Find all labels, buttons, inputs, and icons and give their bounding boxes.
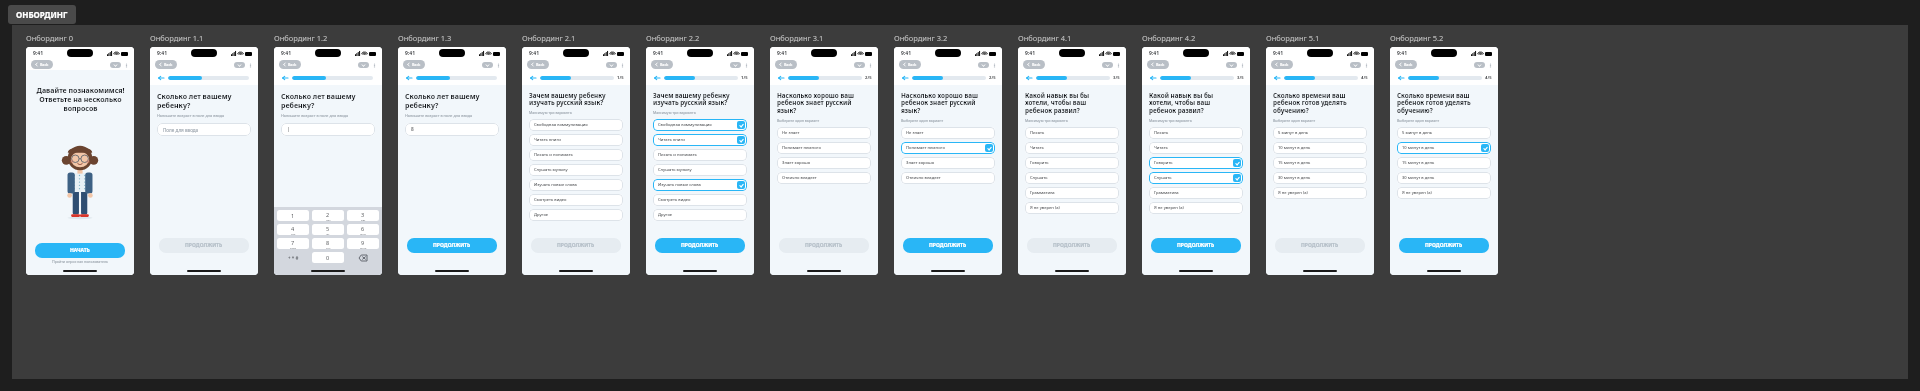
button[interactable]: More <box>247 62 253 68</box>
button[interactable]: ОНБОРДИНГ <box>8 5 76 24</box>
button[interactable]: Expand <box>730 62 741 68</box>
button[interactable]: ПРОДОЛЖИТЬ <box>1275 238 1365 253</box>
button[interactable]: 7 <box>277 238 309 249</box>
button[interactable]: Слушать музыку <box>529 164 623 176</box>
button[interactable]: Другое <box>529 209 623 221</box>
button[interactable]: Back <box>1271 60 1293 69</box>
button[interactable]: Back <box>652 73 661 82</box>
button[interactable]: Я не уверен (а) <box>1397 187 1491 199</box>
button[interactable]: 5 <box>312 224 344 235</box>
button[interactable]: Expand <box>1350 62 1361 68</box>
button[interactable]: Писать и понимать <box>529 149 623 161</box>
button[interactable]: Знает хорошо <box>777 157 871 169</box>
button[interactable]: 6 <box>347 224 379 235</box>
button[interactable]: 8 <box>312 238 344 249</box>
button[interactable]: Изучать новые слова <box>529 179 623 191</box>
button[interactable]: More <box>619 62 625 68</box>
button[interactable]: Читать книги <box>653 134 747 146</box>
button[interactable]: 2 <box>312 210 344 221</box>
button[interactable]: Не знает <box>777 127 871 139</box>
button[interactable]: Свободная коммуникация <box>653 119 747 131</box>
button[interactable]: ПРОДОЛЖИТЬ <box>1151 238 1241 253</box>
button[interactable]: Грамматика <box>1149 187 1243 199</box>
button[interactable]: Back <box>528 73 537 82</box>
button[interactable]: 5 минут в день <box>1273 127 1367 139</box>
button[interactable]: Отлично владеет <box>777 172 871 184</box>
button[interactable]: Грамматика <box>1025 187 1119 199</box>
button[interactable]: Expand <box>1226 62 1237 68</box>
button[interactable]: ПРОДОЛЖИТЬ <box>779 238 869 253</box>
button[interactable]: 30 минут в день <box>1397 172 1491 184</box>
button[interactable]: ПРОДОЛЖИТЬ <box>655 238 745 253</box>
button[interactable]: 9 <box>347 238 379 249</box>
button[interactable]: Понимает немного <box>901 142 995 154</box>
button[interactable]: 5 минут в день <box>1397 127 1491 139</box>
button[interactable]: 10 минут в день <box>1273 142 1367 154</box>
button[interactable]: Я не уверен (а) <box>1273 187 1367 199</box>
button[interactable]: Слушать <box>1025 172 1119 184</box>
button[interactable]: 8 <box>405 123 499 136</box>
button[interactable]: Back <box>776 73 785 82</box>
button[interactable]: Expand <box>482 62 493 68</box>
button[interactable]: Back <box>1147 60 1169 69</box>
button[interactable]: Говорить <box>1149 157 1243 169</box>
button[interactable]: + * # <box>277 252 309 263</box>
button[interactable]: Отлично владеет <box>901 172 995 184</box>
button[interactable]: Смотреть видео <box>653 194 747 206</box>
button[interactable]: НАЧАТЬ <box>35 243 125 258</box>
button[interactable]: Expand <box>978 62 989 68</box>
button[interactable]: Другое <box>653 209 747 221</box>
button[interactable]: Back <box>1023 60 1045 69</box>
button[interactable]: 4 <box>277 224 309 235</box>
button[interactable]: Back <box>156 73 165 82</box>
button[interactable]: Back <box>403 60 425 69</box>
button[interactable]: Слушать музыку <box>653 164 747 176</box>
button[interactable]: More <box>743 62 749 68</box>
button[interactable]: More <box>1363 62 1369 68</box>
button[interactable]: Изучать новые слова <box>653 179 747 191</box>
button[interactable]: Back <box>1396 73 1405 82</box>
button[interactable]: Писать <box>1149 127 1243 139</box>
button[interactable]: Писать и понимать <box>653 149 747 161</box>
button[interactable]: Back <box>775 60 797 69</box>
button[interactable]: 30 минут в день <box>1273 172 1367 184</box>
button[interactable]: ПРОДОЛЖИТЬ <box>903 238 993 253</box>
button[interactable]: ПРОДОЛЖИТЬ <box>407 238 497 253</box>
button[interactable]: More <box>1239 62 1245 68</box>
button[interactable]: Back <box>527 60 549 69</box>
button[interactable]: Читать <box>1025 142 1119 154</box>
button[interactable]: Я не уверен (а) <box>1149 202 1243 214</box>
button[interactable]: Back <box>404 73 413 82</box>
button[interactable]: Back <box>280 73 289 82</box>
button[interactable]: 10 минут в день <box>1397 142 1491 154</box>
button[interactable]: Expand <box>1102 62 1113 68</box>
button[interactable]: ПРОДОЛЖИТЬ <box>1399 238 1489 253</box>
button[interactable]: 0 <box>312 252 344 263</box>
button[interactable]: More <box>867 62 873 68</box>
button[interactable]: Expand <box>854 62 865 68</box>
button[interactable]: Back <box>1148 73 1157 82</box>
button[interactable]: Я не уверен (а) <box>1025 202 1119 214</box>
button[interactable]: Back <box>279 60 301 69</box>
button[interactable]: Expand <box>234 62 245 68</box>
button[interactable]: ПРОДОЛЖИТЬ <box>531 238 621 253</box>
button[interactable]: Expand <box>606 62 617 68</box>
button[interactable]: Back <box>155 60 177 69</box>
button[interactable]: Писать <box>1025 127 1119 139</box>
button[interactable]: Поле для ввода <box>157 123 251 136</box>
button[interactable]: Слушать <box>1149 172 1243 184</box>
button[interactable]: Back <box>1272 73 1281 82</box>
button[interactable]: Delete <box>347 252 379 263</box>
button[interactable]: Знает хорошо <box>901 157 995 169</box>
button[interactable]: Expand <box>1474 62 1485 68</box>
button[interactable]: Смотреть видео <box>529 194 623 206</box>
button[interactable]: Back <box>899 60 921 69</box>
button[interactable]: Back <box>1395 60 1417 69</box>
button[interactable]: 15 минут в день <box>1273 157 1367 169</box>
button[interactable]: Пройти опрос как пользователь <box>52 259 108 264</box>
button[interactable]: More <box>495 62 501 68</box>
button[interactable]: Expand <box>358 62 369 68</box>
button[interactable]: Свободная коммуникация <box>529 119 623 131</box>
button[interactable]: Back <box>1024 73 1033 82</box>
button[interactable]: Back <box>31 60 53 69</box>
